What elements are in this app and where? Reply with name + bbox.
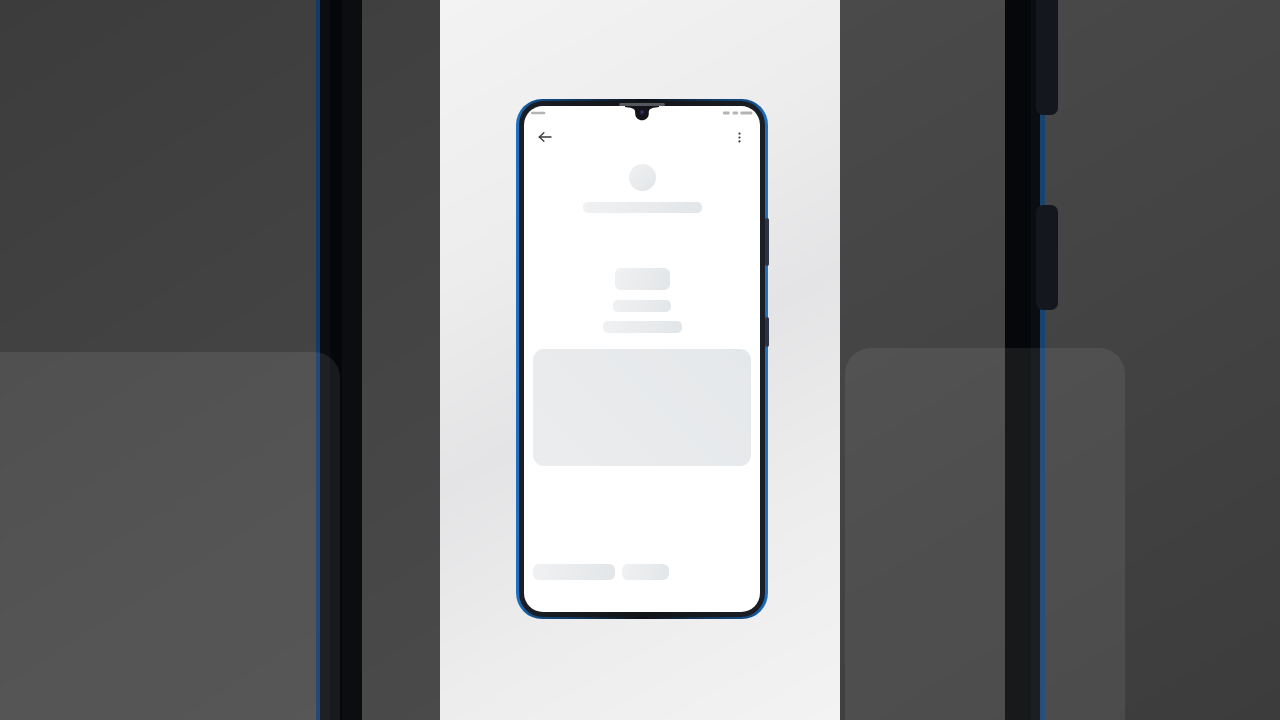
button[interactable] xyxy=(622,564,669,580)
button[interactable] xyxy=(615,268,670,290)
button[interactable] xyxy=(629,164,656,191)
button[interactable]: More options xyxy=(726,124,752,150)
button[interactable] xyxy=(533,564,615,580)
button[interactable]: Back xyxy=(532,124,558,150)
button[interactable] xyxy=(603,321,682,333)
button[interactable] xyxy=(613,300,671,312)
button[interactable] xyxy=(583,202,702,213)
